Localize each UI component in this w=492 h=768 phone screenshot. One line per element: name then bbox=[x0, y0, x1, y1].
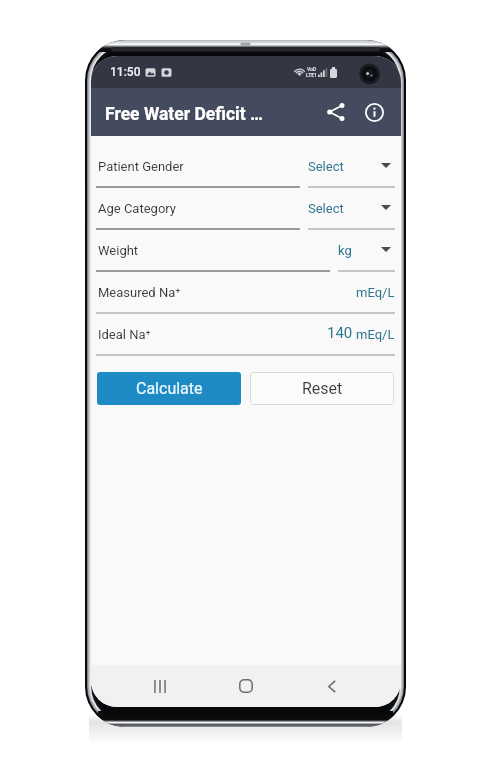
staticText: Ideal Na⁺ bbox=[98, 327, 151, 342]
staticText: Weight bbox=[98, 243, 139, 258]
staticText: Select bbox=[308, 201, 344, 216]
button[interactable]: Select bbox=[300, 151, 401, 193]
staticText: Free Water Deficit … bbox=[105, 104, 263, 125]
staticText: 11:50 bbox=[110, 65, 141, 79]
staticText: 140 bbox=[327, 324, 353, 342]
staticText: Patient Gender bbox=[98, 159, 184, 174]
button[interactable]: Calculate bbox=[97, 372, 241, 405]
button[interactable]: Measured Na⁺ bbox=[91, 277, 401, 319]
staticText: Age Category bbox=[98, 201, 176, 216]
staticText: mEq/L bbox=[356, 327, 395, 342]
button[interactable]: Age Category bbox=[91, 193, 300, 235]
staticText: VoD bbox=[307, 66, 317, 72]
button[interactable]: Weight bbox=[91, 235, 330, 277]
staticText: Measured Na⁺ bbox=[98, 285, 181, 300]
staticText: Select bbox=[308, 159, 344, 174]
button[interactable]: kg bbox=[330, 235, 401, 277]
button[interactable]: Share bbox=[318, 94, 354, 130]
button[interactable]: Select bbox=[300, 193, 401, 235]
button[interactable]: Reset bbox=[250, 372, 394, 405]
staticText: mEq/L bbox=[356, 285, 395, 300]
button[interactable]: Patient Gender bbox=[91, 151, 300, 193]
staticText: Calculate bbox=[136, 379, 203, 398]
button[interactable]: Info bbox=[356, 94, 392, 130]
button[interactable]: Back bbox=[310, 666, 354, 706]
button[interactable]: Recent apps bbox=[138, 666, 182, 706]
staticText: Reset bbox=[302, 379, 343, 398]
staticText: LTE1 bbox=[306, 72, 317, 78]
staticText: kg bbox=[338, 243, 352, 258]
button[interactable]: Ideal Na⁺ bbox=[91, 319, 401, 361]
button[interactable]: Home bbox=[224, 666, 268, 706]
